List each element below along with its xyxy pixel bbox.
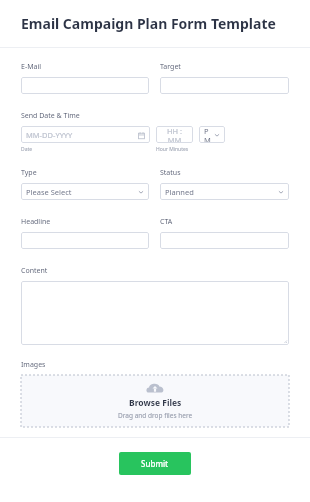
staticText: Planned [165, 187, 194, 197]
staticText: Browse Files [129, 397, 182, 409]
staticText: Please Select [26, 187, 72, 197]
staticText: Email Campaign Plan Form Template [21, 14, 276, 33]
staticText: MM-DD-YYYY [26, 130, 73, 140]
staticText: Headline [21, 217, 51, 227]
button[interactable]: Upload [21, 375, 289, 427]
staticText: Hour Minutes [156, 146, 189, 153]
staticText: Send Date & Time [21, 111, 80, 121]
staticText: Target [160, 62, 181, 72]
staticText: HH : MM [161, 126, 188, 143]
button[interactable]: Planned [160, 183, 289, 200]
staticText: Images [21, 360, 46, 370]
staticText: PM [204, 126, 214, 143]
staticText: E-Mail [21, 62, 42, 72]
button[interactable]: PM [199, 126, 225, 143]
button[interactable] [160, 232, 289, 249]
button[interactable]: Submit [119, 452, 191, 475]
staticText: Submit [141, 458, 169, 469]
button[interactable] [160, 77, 289, 94]
staticText: Type [21, 168, 37, 178]
other: Upload [146, 382, 164, 394]
staticText: Date [21, 146, 156, 153]
staticText: Status [160, 168, 181, 178]
staticText: Content [21, 266, 48, 276]
staticText: CTA [160, 217, 173, 227]
button[interactable] [21, 77, 149, 94]
button[interactable] [21, 281, 289, 345]
button[interactable] [21, 232, 149, 249]
button[interactable]: HH : MM [156, 126, 193, 143]
staticText: Drag and drop files here [118, 411, 193, 420]
button[interactable]: MM-DD-YYYY [21, 126, 150, 143]
button[interactable]: Please Select [21, 183, 149, 200]
